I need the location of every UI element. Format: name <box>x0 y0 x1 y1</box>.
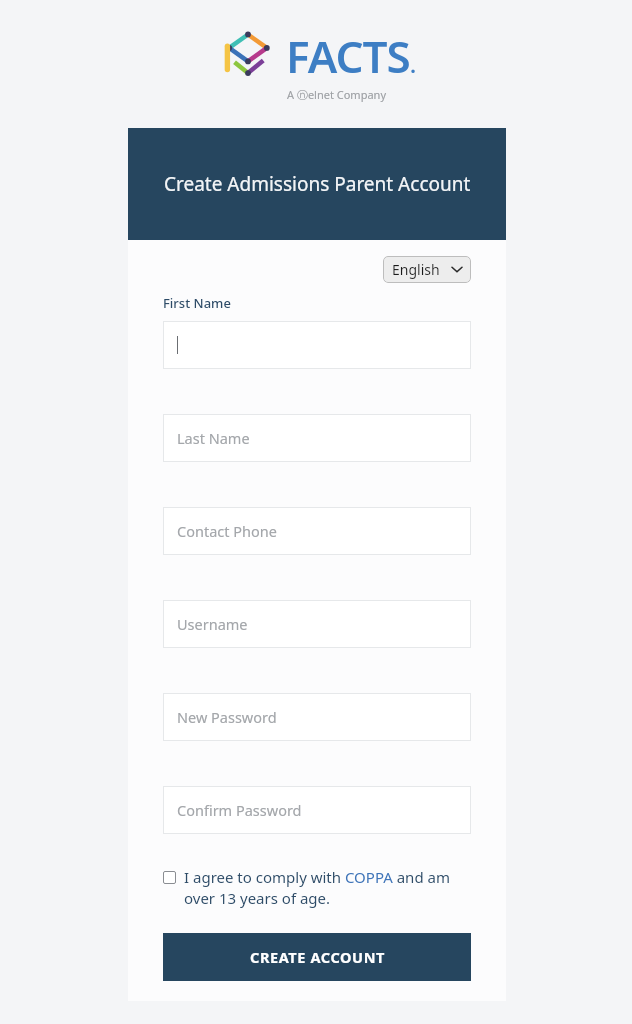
staticText: First Name <box>163 294 231 312</box>
button[interactable] <box>163 321 471 369</box>
staticText: I agree to comply with COPPA and am over… <box>184 867 471 909</box>
staticText: English <box>392 260 440 279</box>
staticText: Contact Phone <box>177 521 277 541</box>
button[interactable]: English <box>383 256 471 283</box>
other: Agree to COPPA checkbox <box>163 871 176 884</box>
button[interactable]: Username <box>163 600 471 648</box>
other: FACTS logo <box>216 30 280 82</box>
button[interactable]: New Password <box>163 693 471 741</box>
staticText: Username <box>177 614 248 634</box>
staticText: Create Admissions Parent Account <box>164 171 471 197</box>
staticText: A ⓝelnet Company <box>287 87 386 102</box>
button[interactable]: Confirm Password <box>163 786 471 834</box>
button[interactable]: CREATE ACCOUNT <box>163 933 471 981</box>
staticText: Last Name <box>177 428 250 448</box>
button[interactable]: Contact Phone <box>163 507 471 555</box>
staticText: . <box>410 49 417 79</box>
button[interactable]: Agree to COPPA checkbox <box>163 867 471 909</box>
staticText: FACTS <box>286 26 410 86</box>
staticText: CREATE ACCOUNT <box>250 947 385 967</box>
staticText: Confirm Password <box>177 800 302 820</box>
staticText: New Password <box>177 707 277 727</box>
button[interactable]: Last Name <box>163 414 471 462</box>
